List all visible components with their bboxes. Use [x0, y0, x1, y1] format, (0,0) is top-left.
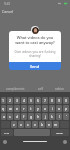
button[interactable]: l — [56, 113, 62, 120]
button[interactable]: x — [18, 121, 24, 128]
button[interactable]: Voice input — [63, 140, 67, 144]
staticText: 3 — [16, 98, 19, 103]
staticText: b — [41, 122, 44, 127]
button[interactable]: return — [51, 129, 69, 136]
staticText: z — [13, 122, 15, 127]
button[interactable]: n — [46, 121, 52, 128]
button[interactable]: 2 — [7, 97, 13, 104]
staticText: 1 — [2, 98, 5, 103]
staticText: 0 — [65, 98, 68, 103]
staticText: x — [20, 122, 22, 127]
button[interactable]: ' — [63, 113, 69, 120]
staticText: q — [2, 106, 5, 111]
staticText: u — [44, 106, 47, 111]
button[interactable]: e — [14, 105, 20, 112]
button[interactable]: Cancel — [1, 8, 15, 15]
staticText: t — [30, 106, 32, 111]
staticText: r — [23, 106, 25, 111]
staticText: n — [48, 122, 51, 127]
button[interactable]: 3 — [14, 97, 20, 104]
button[interactable]: 0 — [63, 97, 69, 104]
button[interactable]: v — [32, 121, 38, 128]
button[interactable]: r — [21, 105, 27, 112]
button[interactable]: b — [39, 121, 45, 128]
staticText: Send — [30, 64, 40, 69]
staticText: g — [30, 114, 33, 119]
button[interactable]: d — [14, 113, 20, 120]
staticText: advice — [55, 87, 64, 91]
staticText: j — [45, 114, 46, 119]
staticText: d — [16, 114, 19, 119]
button[interactable]: z — [11, 121, 17, 128]
button[interactable]: u — [42, 105, 48, 112]
button[interactable]: 1 — [1, 97, 6, 104]
button[interactable]: t — [28, 105, 34, 112]
staticText: Cancel — [2, 9, 14, 14]
button[interactable]: i — [49, 105, 55, 112]
button[interactable]: Profile photo — [31, 26, 39, 34]
staticText: l — [59, 114, 60, 119]
staticText: 5 — [30, 98, 33, 103]
button[interactable]: Send — [9, 62, 61, 70]
button[interactable]: 8 — [49, 97, 55, 104]
button[interactable]: a — [1, 113, 6, 120]
button[interactable]: y — [35, 105, 41, 112]
staticText: m — [54, 122, 58, 127]
staticText: compliments — [6, 87, 25, 91]
staticText: e — [16, 106, 18, 111]
button[interactable]: Emoji — [3, 140, 7, 144]
staticText: Give videos you are fucking sharing! — [12, 50, 58, 58]
staticText: 2 — [9, 98, 12, 103]
staticText: w — [9, 106, 12, 111]
staticText: a — [3, 114, 5, 119]
button[interactable]: 4 — [21, 97, 27, 104]
button[interactable]: w — [7, 105, 13, 112]
button[interactable]: f — [21, 113, 27, 120]
staticText: v — [34, 122, 36, 127]
button[interactable]: 7 — [42, 97, 48, 104]
staticText: i — [52, 106, 53, 111]
staticText: y — [37, 106, 39, 111]
staticText: 7 — [44, 98, 47, 103]
button[interactable]: h — [35, 113, 41, 120]
staticText: ' — [66, 114, 67, 119]
staticText: h — [37, 114, 40, 119]
button[interactable]: j — [42, 113, 48, 120]
staticText: 8 — [51, 98, 54, 103]
staticText: 9 — [58, 98, 61, 103]
staticText: f — [23, 114, 25, 119]
staticText: o — [58, 106, 61, 111]
button[interactable]: p — [63, 105, 69, 112]
staticText: What videos do you want to cast anyway? — [12, 35, 58, 45]
button[interactable]: o — [56, 105, 62, 112]
staticText: k — [51, 114, 53, 119]
staticText: c — [27, 122, 29, 127]
staticText: ?123 — [4, 131, 10, 134]
button[interactable]: ?123 — [1, 129, 13, 136]
staticText: self — [38, 87, 43, 91]
button[interactable]: q — [1, 105, 6, 112]
staticText: p — [65, 106, 68, 111]
button[interactable]: s — [7, 113, 13, 120]
button[interactable]: 5 — [28, 97, 34, 104]
button[interactable]: c — [25, 121, 31, 128]
staticText: 4 — [23, 98, 26, 103]
button[interactable]: m — [53, 121, 59, 128]
staticText: return — [56, 131, 64, 134]
button[interactable]: 9 — [56, 97, 62, 104]
staticText: 6 — [37, 98, 40, 103]
button[interactable]: 6 — [35, 97, 41, 104]
staticText: 9:41 — [4, 2, 11, 6]
staticText: s — [9, 114, 11, 119]
button[interactable]: g — [28, 113, 34, 120]
button[interactable]: k — [49, 113, 55, 120]
